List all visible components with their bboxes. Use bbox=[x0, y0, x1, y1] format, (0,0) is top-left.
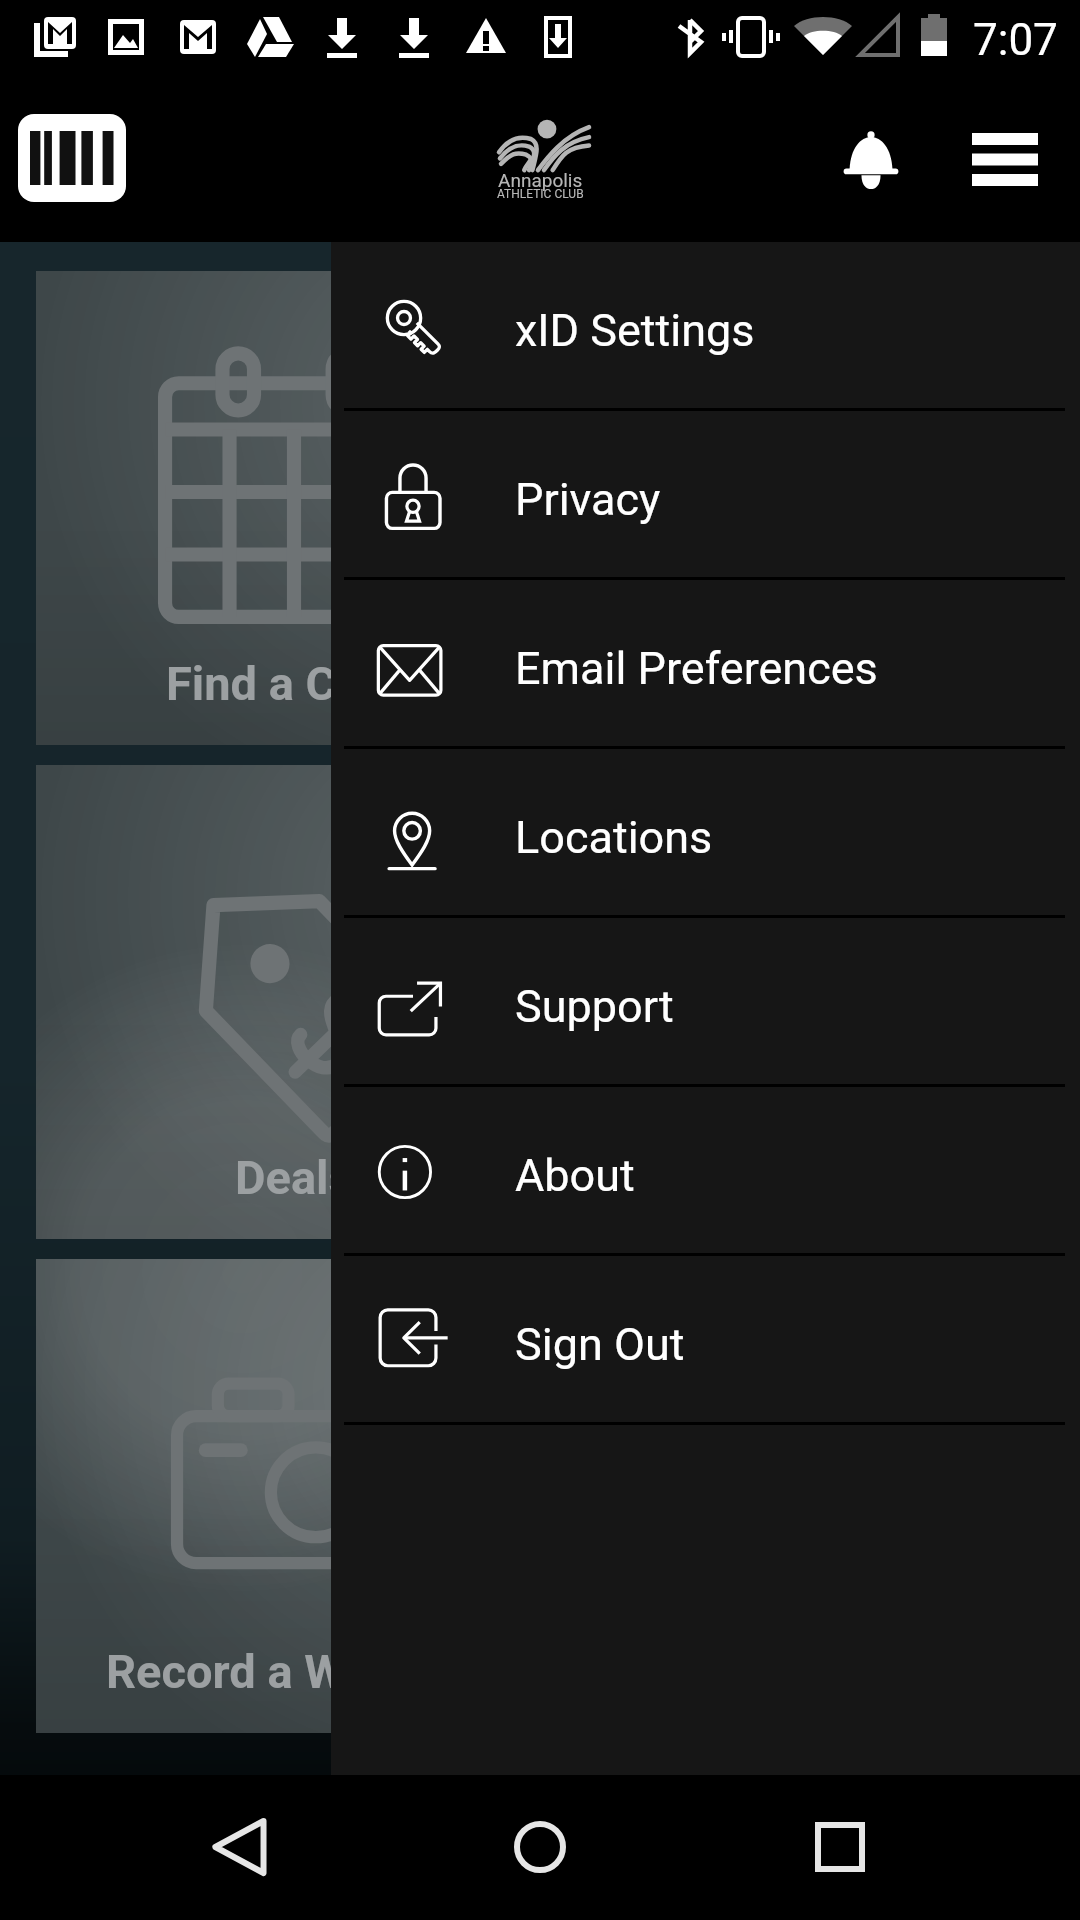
staticText: Locations bbox=[515, 811, 713, 864]
staticText: Deals bbox=[235, 1150, 353, 1205]
staticText: ATHLETIC CLUB bbox=[497, 187, 584, 201]
button[interactable]: Locations bbox=[331, 749, 1080, 918]
button[interactable]: Home bbox=[480, 1797, 600, 1897]
button[interactable]: Find a Class bbox=[36, 271, 552, 745]
staticText: xID Settings bbox=[515, 304, 755, 357]
staticText: Find a Class bbox=[166, 656, 423, 711]
button[interactable] bbox=[572, 1259, 1044, 1733]
button[interactable]: Privacy bbox=[331, 411, 1080, 580]
staticText: Email Preferences bbox=[515, 642, 878, 695]
button[interactable] bbox=[572, 271, 1044, 745]
button[interactable]: xID Settings bbox=[331, 242, 1080, 411]
button[interactable]: Support bbox=[331, 918, 1080, 1087]
staticText: 7:07 bbox=[973, 14, 1058, 66]
staticText: Privacy bbox=[515, 473, 661, 526]
button[interactable]: Recent apps bbox=[780, 1797, 900, 1897]
button[interactable]: Sign Out bbox=[331, 1256, 1080, 1425]
button[interactable]: Back bbox=[180, 1797, 300, 1897]
button[interactable] bbox=[572, 765, 1044, 1239]
staticText: Support bbox=[515, 980, 674, 1033]
button[interactable]: About bbox=[331, 1087, 1080, 1256]
staticText: Sign Out bbox=[515, 1318, 685, 1371]
staticText: Annapolis bbox=[498, 169, 583, 191]
button[interactable]: Email Preferences bbox=[331, 580, 1080, 749]
button[interactable]: Record a Workout bbox=[36, 1259, 552, 1733]
button[interactable]: Membership barcode bbox=[18, 114, 126, 202]
button[interactable]: Deals bbox=[36, 765, 552, 1239]
button[interactable]: Open navigation menu bbox=[955, 109, 1055, 209]
button[interactable]: Notifications bbox=[821, 109, 921, 209]
staticText: About bbox=[515, 1149, 635, 1202]
staticText: Record a Workout bbox=[106, 1644, 483, 1699]
